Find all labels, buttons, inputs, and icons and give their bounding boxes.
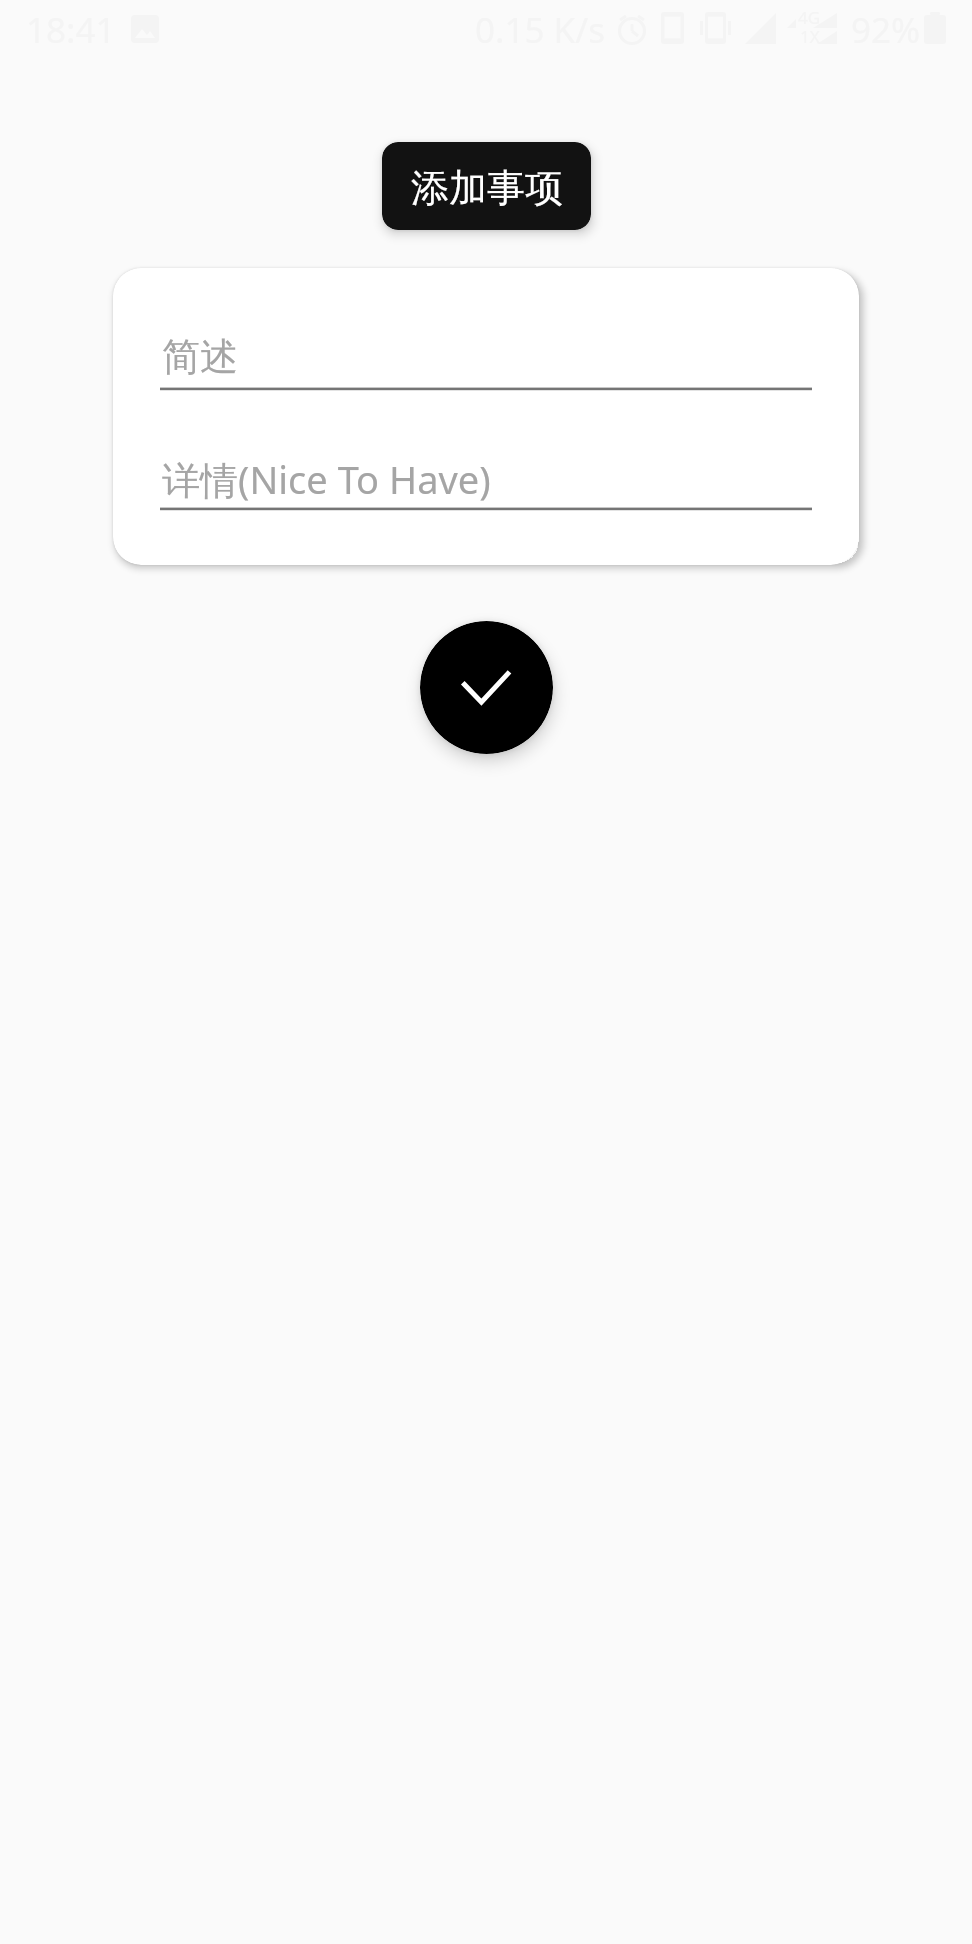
button[interactable]: 详情(Nice To Have) xyxy=(160,456,812,512)
button[interactable]: 简述 xyxy=(160,336,812,392)
staticText: 简述 xyxy=(162,333,238,381)
staticText: 详情(Nice To Have) xyxy=(162,453,491,505)
button[interactable]: 添加事项 xyxy=(382,142,591,230)
button[interactable]: Confirm xyxy=(420,621,553,754)
staticText: 添加事项 xyxy=(411,164,563,212)
